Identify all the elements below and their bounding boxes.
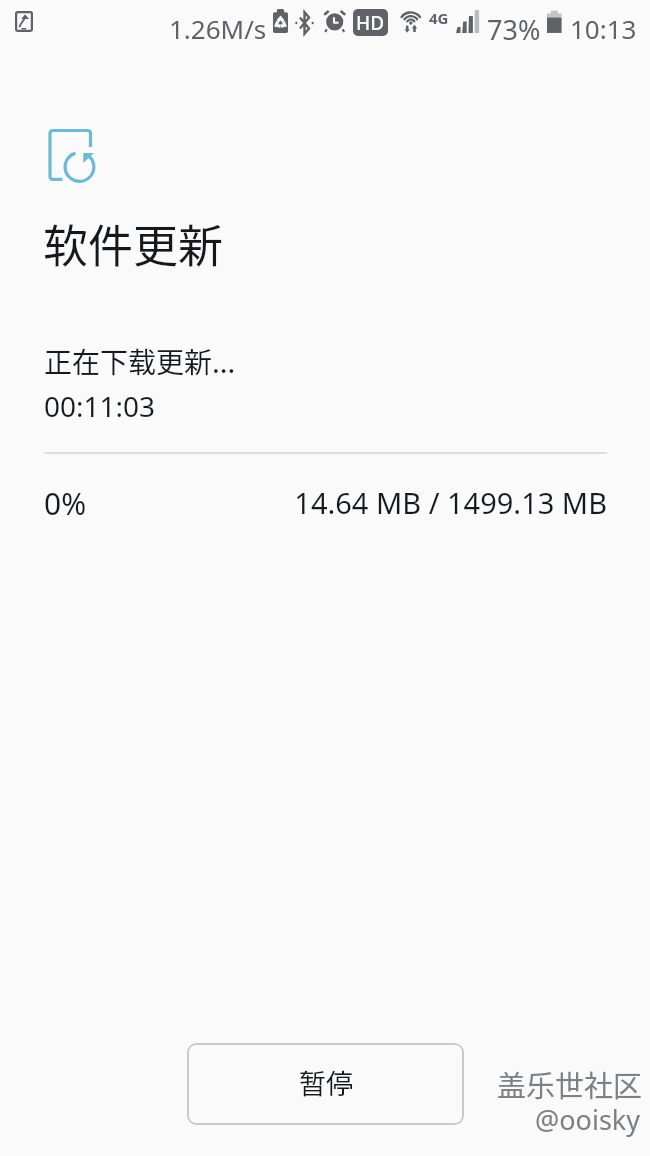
other: Screen rotation [15,11,33,32]
staticText: HD [356,10,385,36]
staticText: 软件更新 [43,211,224,276]
other: Software update [46,124,102,188]
staticText: 暂停 [299,1063,353,1102]
staticText: 1.26M/s [169,11,267,46]
staticText: 10:13 [570,11,637,46]
staticText: 14.64 MB / 1499.13 MB [0,483,607,522]
staticText: 盖乐世社区 [0,1063,642,1105]
button[interactable]: 暂停 [187,1043,464,1125]
staticText: 73% [487,11,541,48]
staticText: @ooisky [0,1101,640,1138]
staticText: 4G [429,8,449,28]
staticText: 0% [44,483,87,524]
staticText: 00:11:03 [44,387,156,425]
staticText: 正在下载更新... [44,341,236,382]
